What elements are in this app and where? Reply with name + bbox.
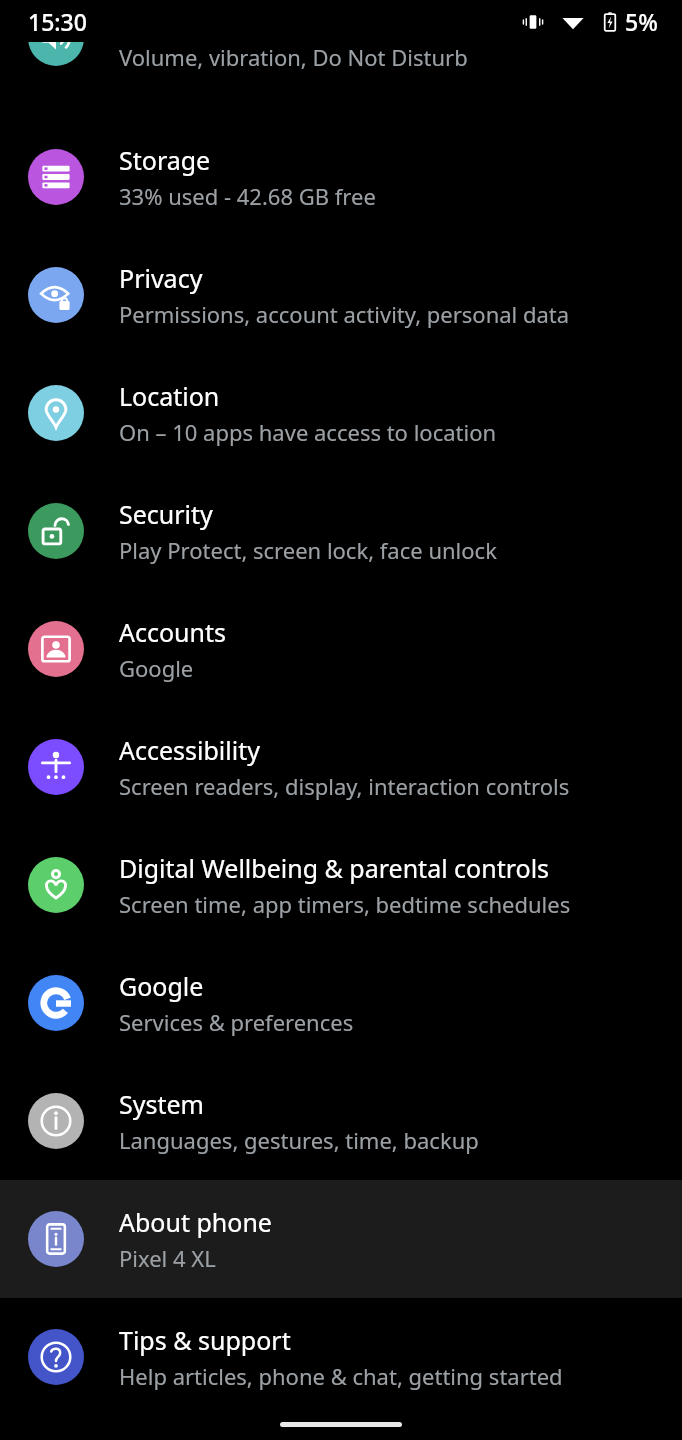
staticText: Storage: [119, 143, 211, 177]
staticText: Permissions, account activity, personal …: [119, 299, 570, 329]
button[interactable]: System: [0, 1062, 682, 1180]
staticText: 5%: [625, 6, 658, 37]
staticText: Accounts: [119, 615, 227, 649]
button[interactable]: About phone: [0, 1180, 682, 1298]
button[interactable]: Accessibility: [0, 708, 682, 826]
button[interactable]: Google: [0, 944, 682, 1062]
button[interactable]: Accounts: [0, 590, 682, 708]
staticText: Google: [119, 969, 204, 1003]
staticText: 33% used - 42.68 GB free: [119, 181, 376, 211]
staticText: Screen readers, display, interaction con…: [119, 771, 570, 801]
staticText: Help articles, phone & chat, getting sta…: [119, 1361, 563, 1391]
staticText: On – 10 apps have access to location: [119, 417, 497, 447]
staticText: System: [119, 1087, 204, 1121]
staticText: Google: [119, 653, 194, 683]
staticText: Volume, vibration, Do Not Disturb: [119, 42, 468, 72]
staticText: Pixel 4 XL: [119, 1243, 216, 1273]
staticText: Screen time, app timers, bedtime schedul…: [119, 889, 571, 919]
staticText: 15:30: [28, 6, 87, 37]
button[interactable]: Digital Wellbeing & parental controls: [0, 826, 682, 944]
button[interactable]: Privacy: [0, 236, 682, 354]
staticText: Play Protect, screen lock, face unlock: [119, 535, 497, 565]
staticText: Languages, gestures, time, backup: [119, 1125, 479, 1155]
staticText: Tips & support: [119, 1323, 291, 1357]
button[interactable]: Storage: [0, 118, 682, 236]
staticText: Accessibility: [119, 733, 260, 767]
button[interactable]: Security: [0, 472, 682, 590]
staticText: Location: [119, 379, 220, 413]
staticText: Digital Wellbeing & parental controls: [119, 851, 550, 885]
button[interactable]: Location: [0, 354, 682, 472]
button[interactable]: Sound: [0, 42, 682, 118]
staticText: About phone: [119, 1205, 272, 1239]
staticText: Security: [119, 497, 213, 531]
staticText: Privacy: [119, 261, 203, 295]
staticText: Services & preferences: [119, 1007, 354, 1037]
button[interactable]: Tips & support: [0, 1298, 682, 1416]
